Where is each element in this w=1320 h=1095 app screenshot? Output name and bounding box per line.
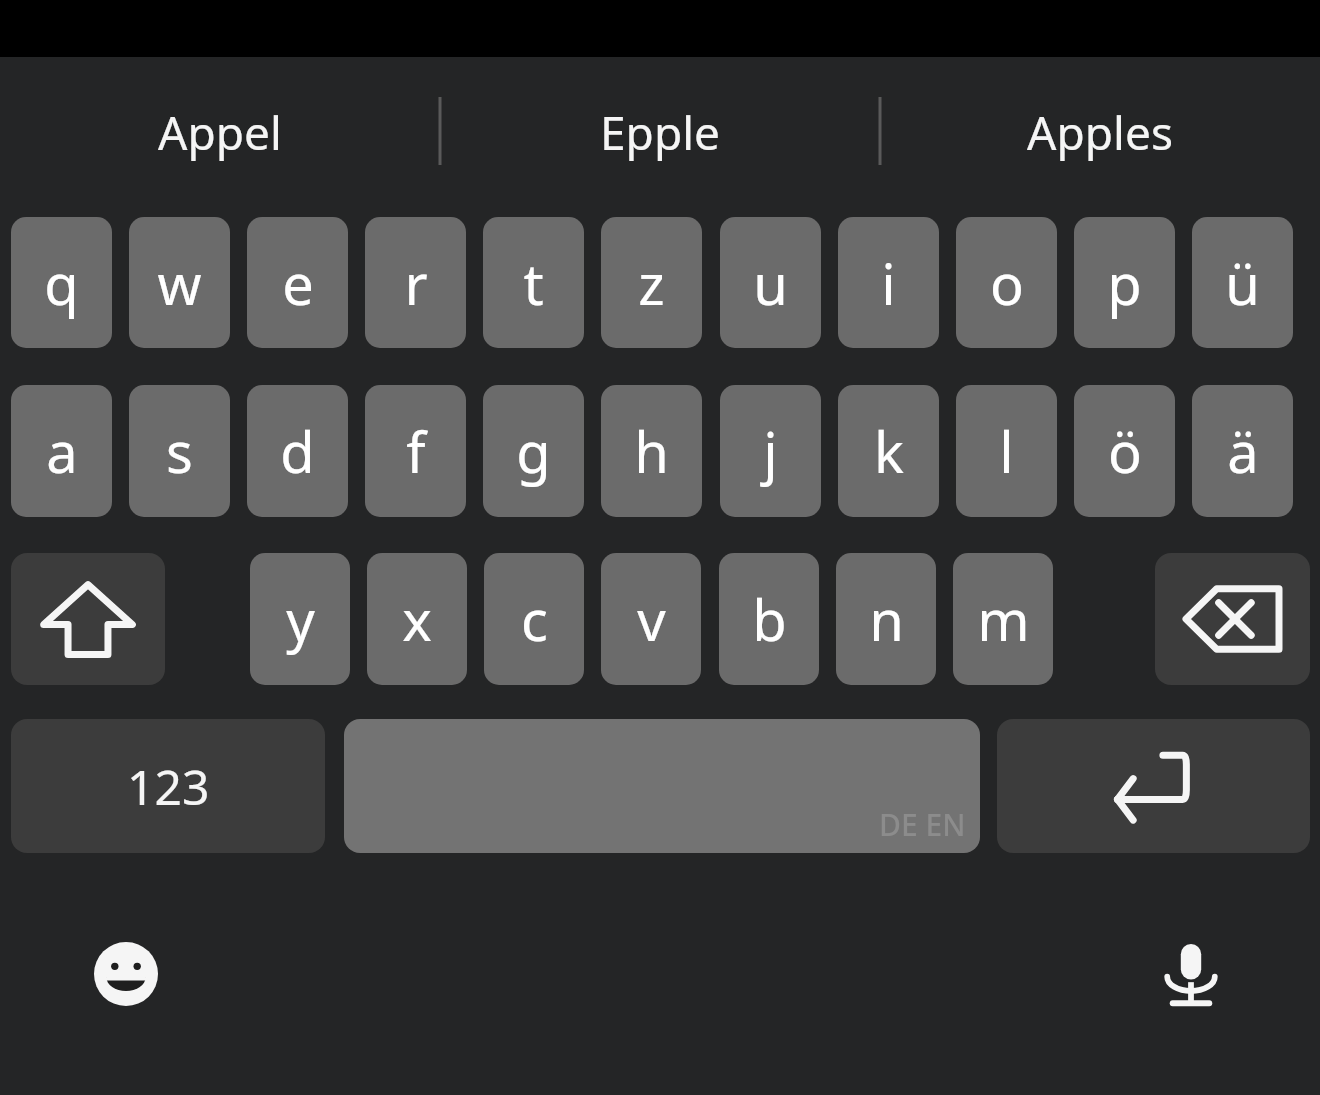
button[interactable]: m	[953, 553, 1053, 685]
button[interactable]: Shift	[11, 553, 165, 685]
button[interactable]: u	[720, 217, 821, 348]
staticText: o	[990, 245, 1024, 321]
staticText: i	[881, 245, 896, 321]
staticText: m	[977, 581, 1030, 657]
staticText: ü	[1225, 245, 1260, 321]
button[interactable]: Appel	[0, 57, 440, 207]
staticText: n	[869, 581, 904, 657]
staticText: Appel	[158, 101, 282, 164]
button[interactable]: i	[838, 217, 939, 348]
button[interactable]: e	[247, 217, 348, 348]
button[interactable]: Enter	[997, 719, 1310, 853]
button[interactable]: ä	[1192, 385, 1293, 517]
button[interactable]: Apples	[880, 57, 1320, 207]
button[interactable]: a	[11, 385, 112, 517]
button[interactable]: Voice input	[1141, 924, 1241, 1024]
button[interactable]: c	[484, 553, 584, 685]
staticText: h	[634, 413, 669, 489]
staticText: b	[752, 581, 787, 657]
staticText: 123	[127, 754, 210, 819]
staticText: a	[46, 413, 78, 489]
button[interactable]: b	[719, 553, 819, 685]
button[interactable]: f	[365, 385, 466, 517]
staticText: s	[166, 413, 193, 489]
staticText: d	[280, 413, 315, 489]
staticText: f	[406, 413, 426, 489]
button[interactable]: p	[1074, 217, 1175, 348]
staticText: g	[516, 413, 551, 489]
button[interactable]: z	[601, 217, 702, 348]
staticText: Apples	[1027, 101, 1173, 164]
button[interactable]: g	[483, 385, 584, 517]
staticText: ä	[1227, 413, 1259, 489]
button[interactable]: Emoji	[76, 924, 176, 1024]
staticText: DE EN	[879, 804, 966, 845]
button[interactable]: Space	[344, 719, 980, 853]
staticText: l	[999, 413, 1014, 489]
staticText: e	[282, 245, 314, 321]
button[interactable]: h	[601, 385, 702, 517]
staticText: ö	[1108, 413, 1142, 489]
button[interactable]: ö	[1074, 385, 1175, 517]
button[interactable]: j	[720, 385, 821, 517]
button[interactable]: 123	[11, 719, 325, 853]
staticText: Epple	[600, 101, 720, 164]
button[interactable]: w	[129, 217, 230, 348]
button[interactable]: r	[365, 217, 466, 348]
button[interactable]: Epple	[440, 57, 880, 207]
button[interactable]: x	[367, 553, 467, 685]
button[interactable]: t	[483, 217, 584, 348]
staticText: j	[763, 413, 778, 489]
staticText: r	[404, 245, 428, 321]
button[interactable]: ü	[1192, 217, 1293, 348]
button[interactable]: v	[601, 553, 701, 685]
staticText: t	[523, 245, 544, 321]
button[interactable]: l	[956, 385, 1057, 517]
button[interactable]: n	[836, 553, 936, 685]
button[interactable]: k	[838, 385, 939, 517]
button[interactable]: s	[129, 385, 230, 517]
button[interactable]: y	[250, 553, 350, 685]
staticText: v	[637, 581, 666, 657]
staticText: c	[521, 581, 548, 657]
staticText: y	[286, 581, 315, 657]
staticText: k	[874, 413, 904, 489]
button[interactable]: o	[956, 217, 1057, 348]
staticText: w	[157, 245, 202, 321]
button[interactable]: d	[247, 385, 348, 517]
staticText: u	[753, 245, 788, 321]
staticText: p	[1107, 245, 1142, 321]
button[interactable]: Backspace	[1155, 553, 1310, 685]
staticText: x	[402, 581, 432, 657]
staticText: q	[44, 245, 79, 321]
button[interactable]: q	[11, 217, 112, 348]
staticText: z	[638, 245, 665, 321]
